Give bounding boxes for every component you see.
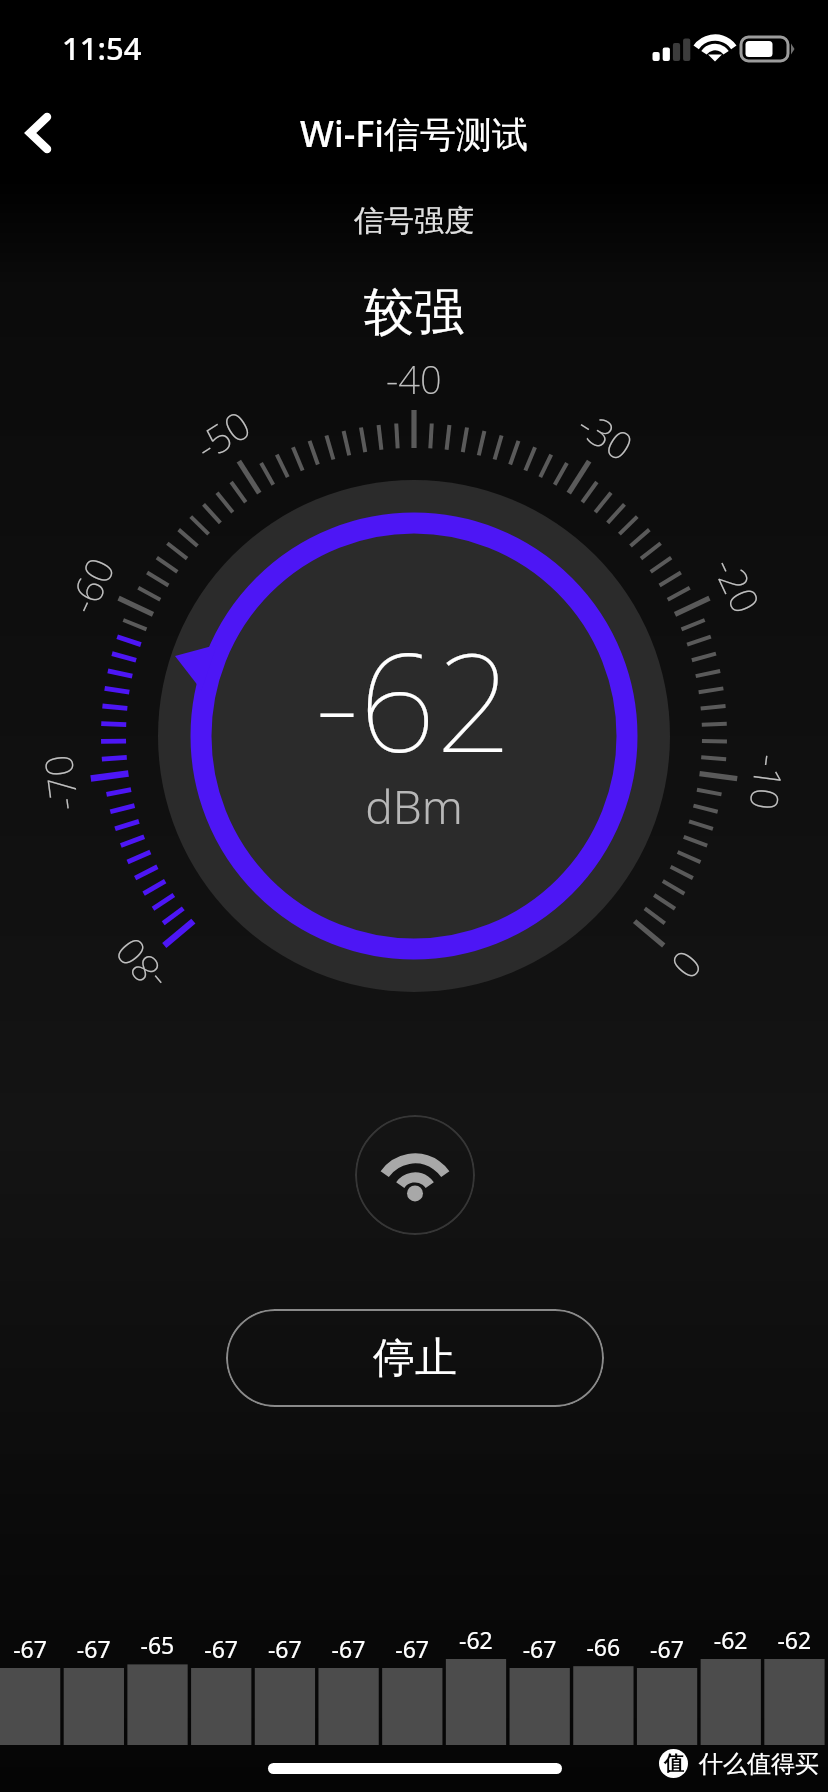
button[interactable]: Back bbox=[2, 96, 76, 170]
staticText: 11:54 bbox=[62, 27, 142, 69]
staticText: 什么值得买 bbox=[699, 1749, 819, 1779]
button[interactable]: Wi-Fi bbox=[355, 1115, 475, 1235]
staticText: dBm bbox=[0, 775, 828, 838]
staticText: Wi-Fi信号测试 bbox=[0, 109, 828, 158]
staticText: 较强 bbox=[0, 281, 828, 344]
staticText: 信号强度 bbox=[0, 202, 828, 240]
staticText: 停止 bbox=[373, 1332, 457, 1385]
staticText: -62 bbox=[0, 608, 828, 792]
button[interactable]: 停止 bbox=[226, 1309, 604, 1407]
staticText: 值 bbox=[664, 1751, 684, 1776]
